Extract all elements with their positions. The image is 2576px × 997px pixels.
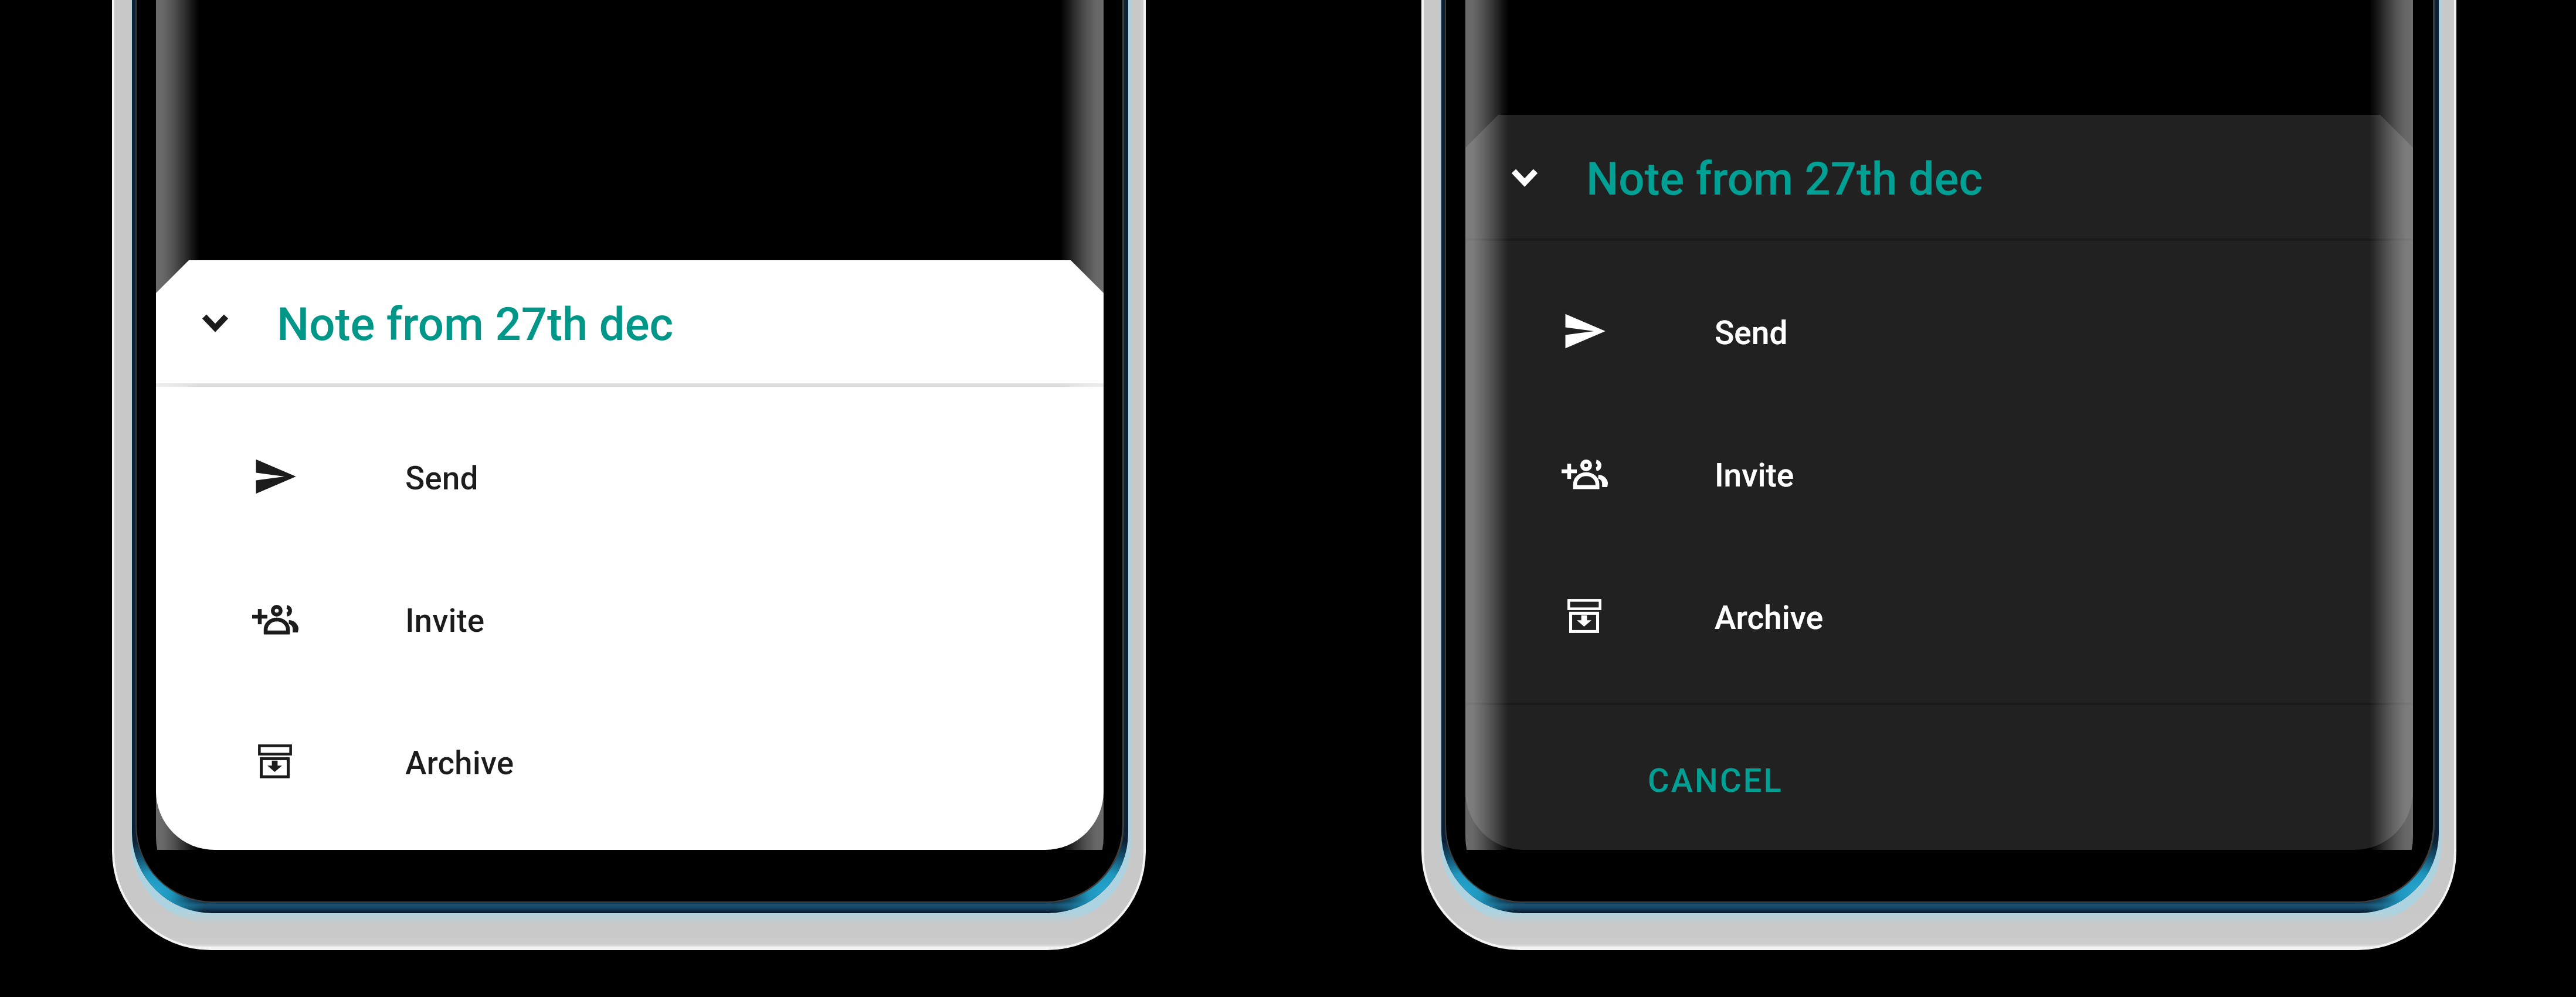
staticText: Invite (1715, 457, 1794, 494)
button[interactable]: Archive (156, 691, 1104, 833)
other: Collapse (192, 299, 238, 345)
staticText: Note from 27th dec (277, 298, 674, 351)
button[interactable]: Collapse (156, 260, 1104, 386)
button[interactable]: Invite (156, 549, 1104, 691)
staticText: CANCEL (1648, 761, 1784, 800)
staticText: Send (405, 460, 478, 497)
other: Collapse (1502, 154, 1547, 199)
staticText: Send (1715, 314, 1788, 352)
staticText: Archive (1715, 599, 1824, 637)
button[interactable]: Send (156, 406, 1104, 549)
button[interactable]: Invite (1465, 403, 2413, 546)
staticText: Invite (405, 602, 485, 639)
button[interactable]: CANCEL (1465, 705, 2413, 848)
button[interactable]: Send (1465, 261, 2413, 403)
staticText: Note from 27th dec (1586, 152, 1983, 206)
button[interactable]: Collapse (1465, 115, 2413, 241)
button[interactable]: Archive (1465, 546, 2413, 688)
staticText: Archive (405, 744, 514, 782)
